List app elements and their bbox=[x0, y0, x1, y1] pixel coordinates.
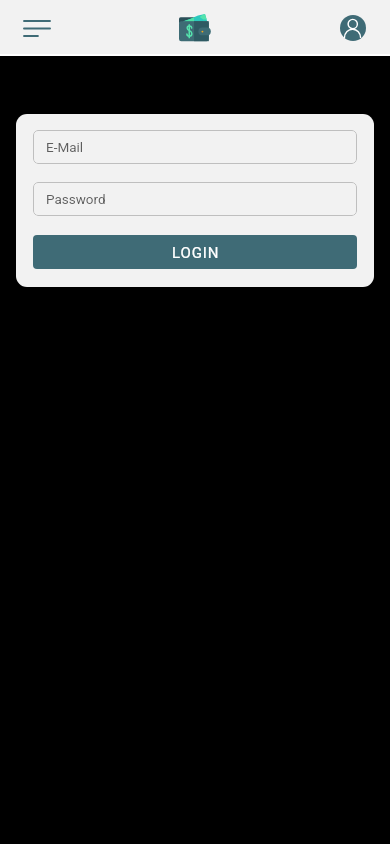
staticText: Password bbox=[46, 191, 106, 207]
button[interactable]: Menu bbox=[15, 6, 59, 50]
button[interactable]: Account bbox=[331, 6, 375, 50]
button[interactable]: E-Mail bbox=[33, 130, 357, 164]
staticText: LOGIN bbox=[172, 244, 220, 262]
button[interactable]: Password bbox=[33, 182, 357, 216]
staticText: E-Mail bbox=[46, 139, 84, 155]
button[interactable]: LOGIN bbox=[33, 235, 357, 269]
